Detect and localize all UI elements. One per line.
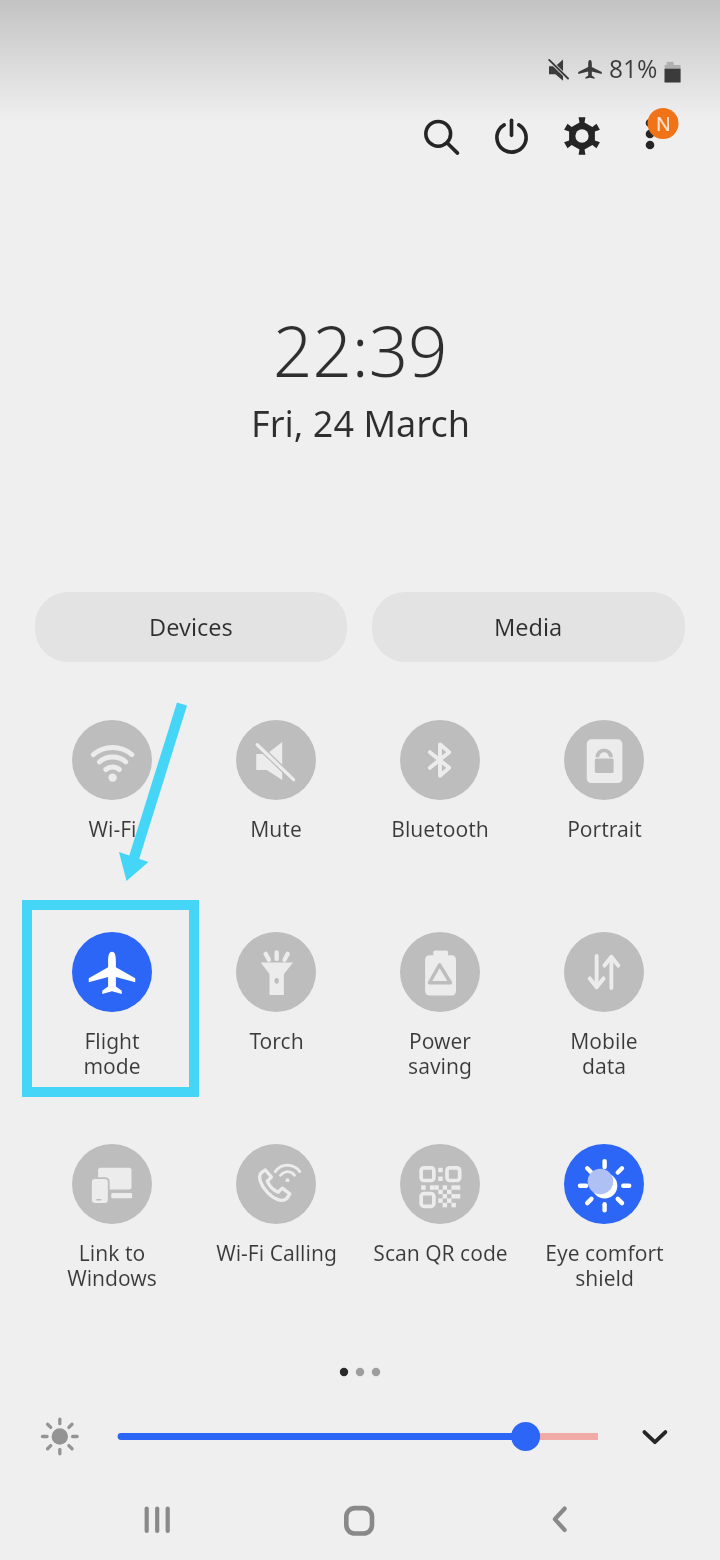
button[interactable]: Search xyxy=(412,108,472,168)
staticText: Eye comfort shield xyxy=(545,1239,664,1292)
button[interactable]: Scan QR code xyxy=(358,1144,522,1268)
button[interactable]: Back xyxy=(500,1489,620,1549)
staticText: Fri, 24 March xyxy=(251,399,470,448)
button[interactable]: Devices xyxy=(35,592,347,662)
button[interactable]: Wi-Fi xyxy=(30,720,194,844)
staticText: Flight mode xyxy=(83,1027,141,1080)
staticText: Torch xyxy=(249,1027,304,1056)
button[interactable]: Mobile data xyxy=(522,932,686,1080)
button[interactable]: Media xyxy=(372,592,685,662)
staticText: Wi-Fi Calling xyxy=(216,1239,337,1268)
staticText: N xyxy=(656,110,671,137)
button[interactable]: Eye comfort shield xyxy=(522,1144,686,1292)
staticText: Link to Windows xyxy=(67,1239,157,1292)
staticText: 22:39 xyxy=(273,303,448,397)
staticText: Wi-Fi xyxy=(88,815,137,844)
staticText: Mute xyxy=(250,815,302,844)
button[interactable]: Settings xyxy=(552,106,612,166)
staticText: Devices xyxy=(149,611,233,643)
staticText: Media xyxy=(494,611,563,643)
staticText: Portrait xyxy=(567,815,642,844)
button[interactable]: Portrait xyxy=(522,720,686,844)
button[interactable]: Power off xyxy=(481,107,541,167)
button[interactable]: Link to Windows xyxy=(30,1144,194,1292)
staticText: Power saving xyxy=(408,1027,472,1080)
button[interactable]: Power saving xyxy=(358,932,522,1080)
button[interactable]: Wi-Fi Calling xyxy=(194,1144,358,1268)
button[interactable]: Mute xyxy=(194,720,358,844)
staticText: Bluetooth xyxy=(391,815,489,844)
button[interactable]: Recents xyxy=(97,1489,217,1549)
button[interactable]: Torch xyxy=(194,932,358,1056)
button[interactable]: Flight mode xyxy=(30,932,194,1080)
button[interactable]: More options xyxy=(620,97,690,167)
button[interactable]: Home xyxy=(299,1489,419,1549)
staticText: Scan QR code xyxy=(373,1239,508,1268)
staticText: Mobile data xyxy=(570,1027,638,1080)
staticText: 81% xyxy=(609,52,658,85)
button[interactable]: Bluetooth xyxy=(358,720,522,844)
